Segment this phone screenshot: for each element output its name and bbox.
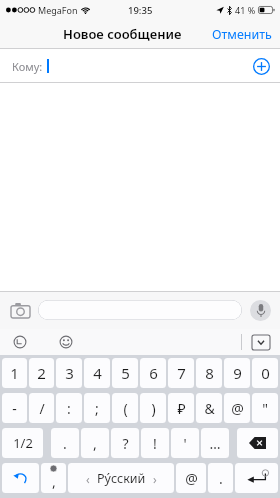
button[interactable]: 0 xyxy=(252,358,278,388)
button[interactable]: Return xyxy=(235,463,278,493)
staticText: ) xyxy=(151,399,156,418)
staticText: ; xyxy=(95,399,99,418)
button[interactable]: ' xyxy=(171,428,199,458)
button[interactable]: / xyxy=(29,393,54,423)
button[interactable]: 4 xyxy=(84,358,110,388)
button[interactable]: 9 xyxy=(224,358,250,388)
button[interactable]: ? xyxy=(111,428,139,458)
staticText: . xyxy=(219,469,223,488)
button[interactable]: Dictate xyxy=(248,298,272,322)
staticText: 19:35 xyxy=(128,4,153,17)
staticText: " xyxy=(262,399,268,418)
staticText: , xyxy=(93,434,97,453)
button[interactable]: 2 xyxy=(29,358,54,388)
staticText: 4 xyxy=(93,363,102,383)
staticText: , xyxy=(52,472,56,491)
staticText: Отменить xyxy=(212,26,272,43)
button[interactable]: 8 xyxy=(196,358,222,388)
button[interactable]: Comma and globe xyxy=(41,463,66,493)
staticText: ! xyxy=(153,434,157,453)
staticText: . xyxy=(63,434,67,453)
staticText: ? xyxy=(122,434,129,453)
button[interactable] xyxy=(38,300,242,320)
staticText: 2 xyxy=(37,363,46,383)
staticText: - xyxy=(12,399,17,418)
staticText: 1/2 xyxy=(13,434,33,452)
button[interactable]: ) xyxy=(140,393,166,423)
staticText: 0 xyxy=(261,363,270,383)
button[interactable]: 5 xyxy=(112,358,138,388)
button[interactable]: Camera xyxy=(8,298,32,322)
button[interactable]: Hide keyboard xyxy=(252,335,270,350)
staticText: ‹ xyxy=(86,471,90,487)
button[interactable]: 1 xyxy=(2,358,27,388)
button[interactable]: 6 xyxy=(140,358,166,388)
button[interactable]: Emoji xyxy=(56,332,76,352)
button[interactable]: ₽ xyxy=(168,393,194,423)
button[interactable]: ( xyxy=(112,393,138,423)
button[interactable]: @ xyxy=(176,463,206,493)
staticText: & xyxy=(204,399,215,418)
button[interactable]: Отменить xyxy=(204,22,280,47)
button[interactable]: 3 xyxy=(56,358,82,388)
staticText: 3 xyxy=(65,363,74,383)
button[interactable]: Add contact xyxy=(250,55,272,77)
staticText: ' xyxy=(183,434,187,453)
staticText: … xyxy=(209,434,221,453)
staticText: 5 xyxy=(121,363,130,383)
staticText: 6 xyxy=(149,363,158,383)
staticText: 9 xyxy=(233,363,242,383)
button[interactable]: Undo xyxy=(2,463,39,493)
staticText: 7 xyxy=(177,363,186,383)
staticText: @ xyxy=(185,469,198,488)
button[interactable]: . xyxy=(208,463,233,493)
button[interactable]: . xyxy=(51,428,79,458)
staticText: : xyxy=(67,399,71,418)
staticText: ₽ xyxy=(177,399,186,418)
staticText: @ xyxy=(231,399,244,418)
staticText: ( xyxy=(123,399,128,418)
button[interactable]: ; xyxy=(84,393,110,423)
button[interactable]: Backspace xyxy=(237,428,278,458)
button[interactable]: : xyxy=(56,393,82,423)
staticText: / xyxy=(39,399,45,418)
staticText: Новое сообщение xyxy=(63,25,182,43)
staticText: MegaFon xyxy=(38,4,78,16)
staticText: Кому: xyxy=(12,59,43,74)
button[interactable]: - xyxy=(2,393,27,423)
button[interactable]: " xyxy=(252,393,278,423)
staticText: 1 xyxy=(10,363,19,383)
button[interactable]: & xyxy=(196,393,222,423)
button[interactable]: 7 xyxy=(168,358,194,388)
button[interactable]: Stickers xyxy=(10,332,30,352)
staticText: 8 xyxy=(205,363,214,383)
button[interactable]: 1/2 xyxy=(2,428,43,458)
staticText: 41 % xyxy=(235,4,256,16)
button[interactable]: , xyxy=(81,428,109,458)
button[interactable]: @ xyxy=(224,393,250,423)
button[interactable]: … xyxy=(201,428,229,458)
staticText: › xyxy=(153,471,157,487)
staticText: Рýсский xyxy=(97,470,146,487)
button[interactable]: ! xyxy=(141,428,169,458)
button[interactable]: ‹ xyxy=(68,463,174,493)
